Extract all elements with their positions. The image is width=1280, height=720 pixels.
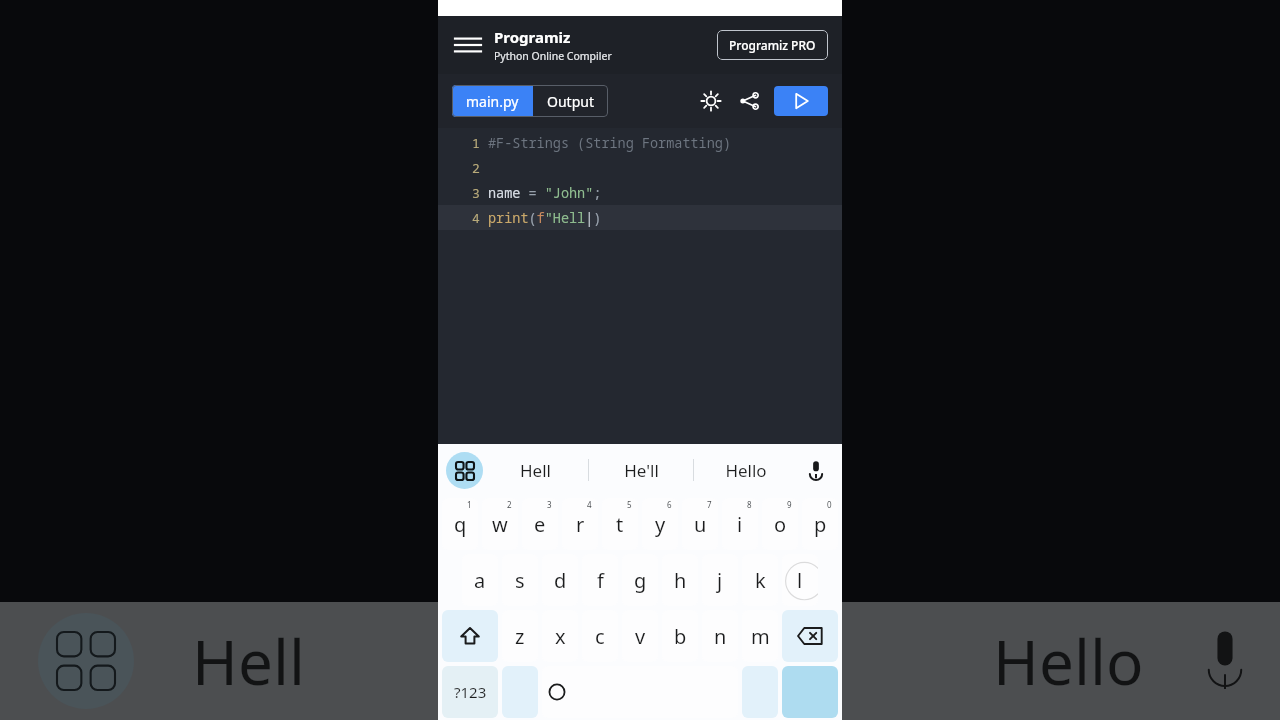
button[interactable]: Keyboard options (446, 452, 483, 489)
staticText: t (616, 511, 624, 538)
button[interactable]: v (622, 610, 658, 662)
staticText: 1 (472, 134, 480, 152)
staticText: 1 (467, 499, 472, 510)
staticText: print(f"Hell|) (488, 209, 602, 227)
staticText: Hell (192, 619, 305, 703)
button[interactable]: l (782, 554, 818, 606)
staticText: 2 (507, 499, 512, 510)
button[interactable]: Voice input (798, 452, 834, 488)
button[interactable]: Run (774, 86, 828, 116)
staticText: q (454, 511, 467, 538)
staticText: p (814, 511, 827, 538)
staticText: x (555, 623, 566, 650)
button[interactable]: Share (734, 86, 764, 116)
button[interactable]: Period (742, 666, 778, 718)
staticText: e (534, 511, 546, 538)
staticText: k (755, 567, 766, 594)
button[interactable]: Space (542, 666, 738, 718)
button[interactable]: u (682, 498, 718, 550)
staticText: 3 (472, 184, 480, 202)
button[interactable]: Enter (782, 666, 838, 718)
staticText: Output (547, 92, 594, 111)
staticText: 4 (472, 209, 480, 227)
staticText: y (655, 511, 666, 538)
button[interactable]: Backspace (782, 610, 838, 662)
staticText: d (554, 567, 567, 594)
button[interactable]: He'll (589, 444, 693, 496)
staticText: main.py (466, 92, 519, 111)
staticText: 3 (547, 499, 552, 510)
staticText: z (515, 623, 525, 650)
button[interactable]: p (802, 498, 838, 550)
button[interactable]: b (662, 610, 698, 662)
button[interactable]: w (482, 498, 518, 550)
button[interactable]: m (742, 610, 778, 662)
button[interactable]: Theme (696, 86, 726, 116)
button[interactable]: h (662, 554, 698, 606)
button[interactable]: q (442, 498, 478, 550)
button[interactable]: g (622, 554, 658, 606)
button[interactable]: main.py (452, 85, 533, 117)
button[interactable]: a (462, 554, 498, 606)
staticText: 5 (627, 499, 632, 510)
button[interactable]: e (522, 498, 558, 550)
staticText: Hello (725, 459, 767, 482)
staticText: Hell (520, 459, 551, 482)
button[interactable]: f (582, 554, 618, 606)
button[interactable]: Hell (483, 444, 588, 496)
button[interactable]: o (762, 498, 798, 550)
staticText: 8 (747, 499, 752, 510)
button[interactable]: ?123 (442, 666, 498, 718)
button[interactable]: n (702, 610, 738, 662)
staticText: Programiz PRO (729, 37, 816, 53)
staticText: 9 (787, 499, 792, 510)
staticText: w (492, 511, 508, 538)
staticText: 6 (667, 499, 672, 510)
staticText: 7 (707, 499, 712, 510)
button[interactable]: r (562, 498, 598, 550)
button[interactable]: Hello (694, 444, 798, 496)
staticText: b (674, 623, 687, 650)
staticText: s (515, 567, 525, 594)
staticText: 4 (587, 499, 592, 510)
staticText: a (474, 567, 486, 594)
staticText: name = "John"; (488, 184, 602, 202)
staticText: #F-Strings (String Formatting) (488, 134, 731, 152)
button[interactable]: s (502, 554, 538, 606)
button[interactable]: Shift (442, 610, 498, 662)
staticText: He'll (624, 459, 659, 482)
button[interactable]: k (742, 554, 778, 606)
staticText: m (751, 623, 770, 650)
staticText: 0 (827, 499, 832, 510)
staticText: v (635, 623, 646, 650)
button[interactable]: Programiz PRO (717, 30, 828, 60)
staticText: f (597, 567, 604, 594)
button[interactable]: x (542, 610, 578, 662)
staticText: j (717, 567, 723, 594)
button[interactable]: d (542, 554, 578, 606)
button[interactable]: Menu (452, 29, 484, 61)
staticText: n (714, 623, 727, 650)
staticText: l (797, 567, 803, 594)
staticText: 2 (472, 159, 480, 177)
staticText: g (634, 567, 647, 594)
button[interactable]: i (722, 498, 758, 550)
button[interactable]: Comma (502, 666, 538, 718)
staticText: u (694, 511, 707, 538)
staticText: h (674, 567, 687, 594)
staticText: c (595, 623, 605, 650)
button[interactable]: c (582, 610, 618, 662)
staticText: Programiz (494, 27, 571, 47)
button[interactable]: t (602, 498, 638, 550)
staticText: r (576, 511, 585, 538)
staticText: Python Online Compiler (494, 49, 612, 63)
button[interactable]: z (502, 610, 538, 662)
staticText: ?123 (454, 682, 487, 702)
button[interactable]: Output (533, 85, 608, 117)
button[interactable]: y (642, 498, 678, 550)
staticText: Hello (993, 619, 1144, 703)
staticText: i (737, 511, 743, 538)
button[interactable]: j (702, 554, 738, 606)
staticText: o (774, 511, 787, 538)
